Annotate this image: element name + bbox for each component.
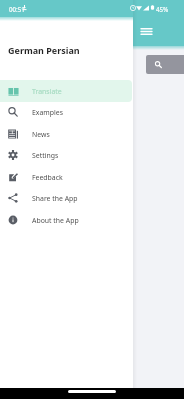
button[interactable]: Examples (0, 101, 132, 123)
staticText: About the App (32, 216, 79, 225)
staticText: 00:51 (9, 5, 25, 13)
staticText: Share the App (32, 194, 78, 203)
button[interactable]: Translate (0, 80, 132, 102)
button[interactable]: Feedback (0, 166, 132, 188)
staticText: Examples (32, 108, 63, 117)
button[interactable]: News (0, 123, 132, 145)
button[interactable]: Share the App (0, 187, 132, 209)
staticText: 45% (156, 5, 169, 13)
button[interactable]: Search (146, 55, 184, 74)
button[interactable]: Settings (0, 144, 132, 166)
staticText: Feedback (32, 173, 63, 182)
staticText: German Persian (8, 44, 80, 56)
staticText: Settings (32, 151, 59, 160)
button[interactable]: Open navigation menu (137, 22, 156, 41)
staticText: Translate (32, 87, 62, 96)
staticText: News (32, 130, 50, 139)
button[interactable]: About the App (0, 209, 132, 231)
